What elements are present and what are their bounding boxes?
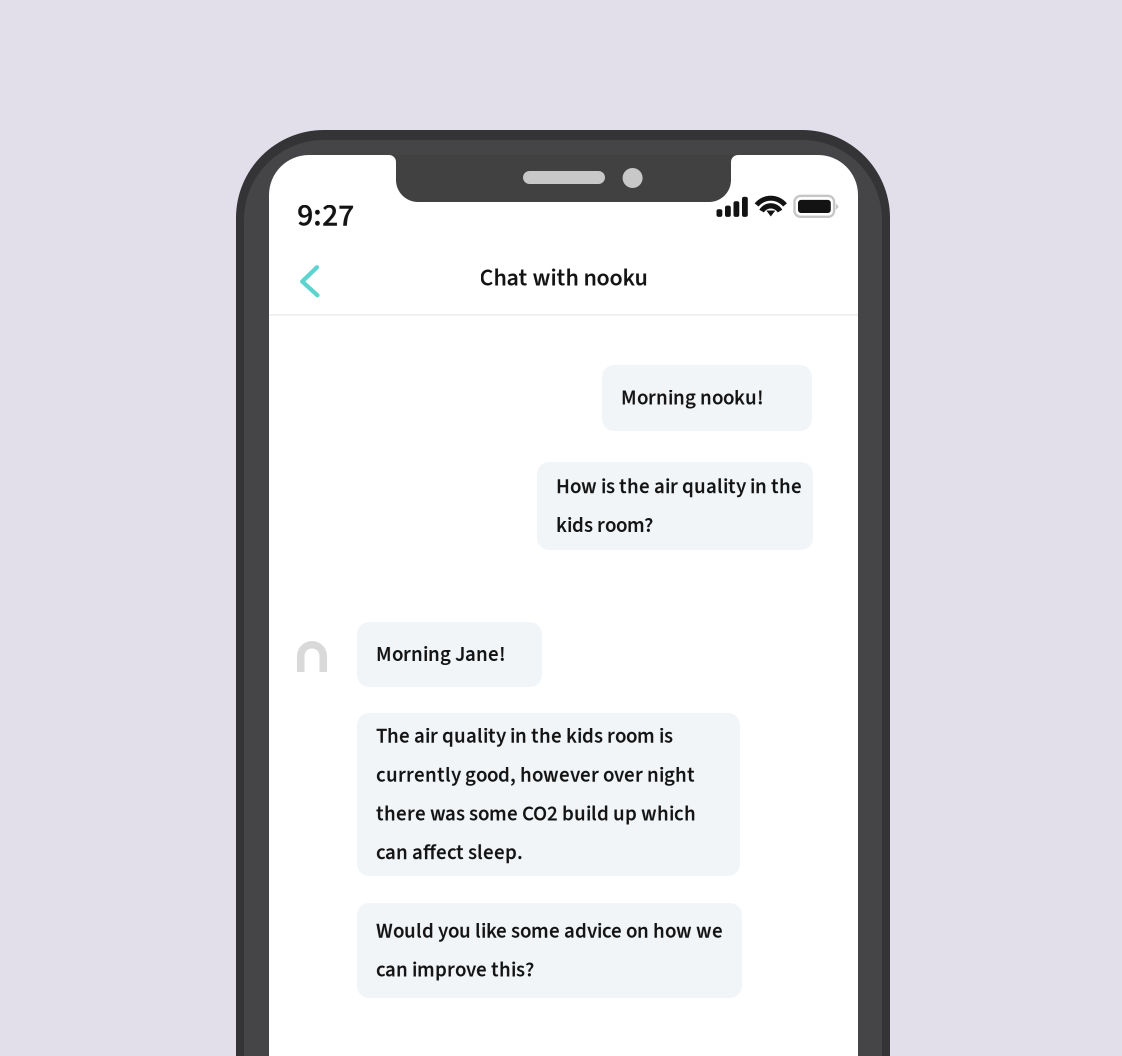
staticText: Morning nooku! bbox=[621, 383, 764, 413]
staticText: can improve this? bbox=[376, 955, 534, 985]
staticText: Morning Jane! bbox=[376, 640, 506, 669]
staticText: Would you like some advice on how we bbox=[376, 916, 723, 946]
staticText: currently good, however over night bbox=[376, 760, 695, 790]
staticText: Chat with nooku bbox=[479, 261, 647, 295]
staticText: kids room? bbox=[556, 510, 653, 540]
staticText: can affect sleep. bbox=[376, 838, 523, 868]
staticText: How is the air quality in the bbox=[556, 472, 802, 501]
staticText: there was some CO2 build up which bbox=[376, 799, 696, 829]
button[interactable]: Back bbox=[281, 252, 339, 310]
staticText: 9:27 bbox=[297, 193, 354, 239]
staticText: The air quality in the kids room is bbox=[376, 721, 673, 751]
